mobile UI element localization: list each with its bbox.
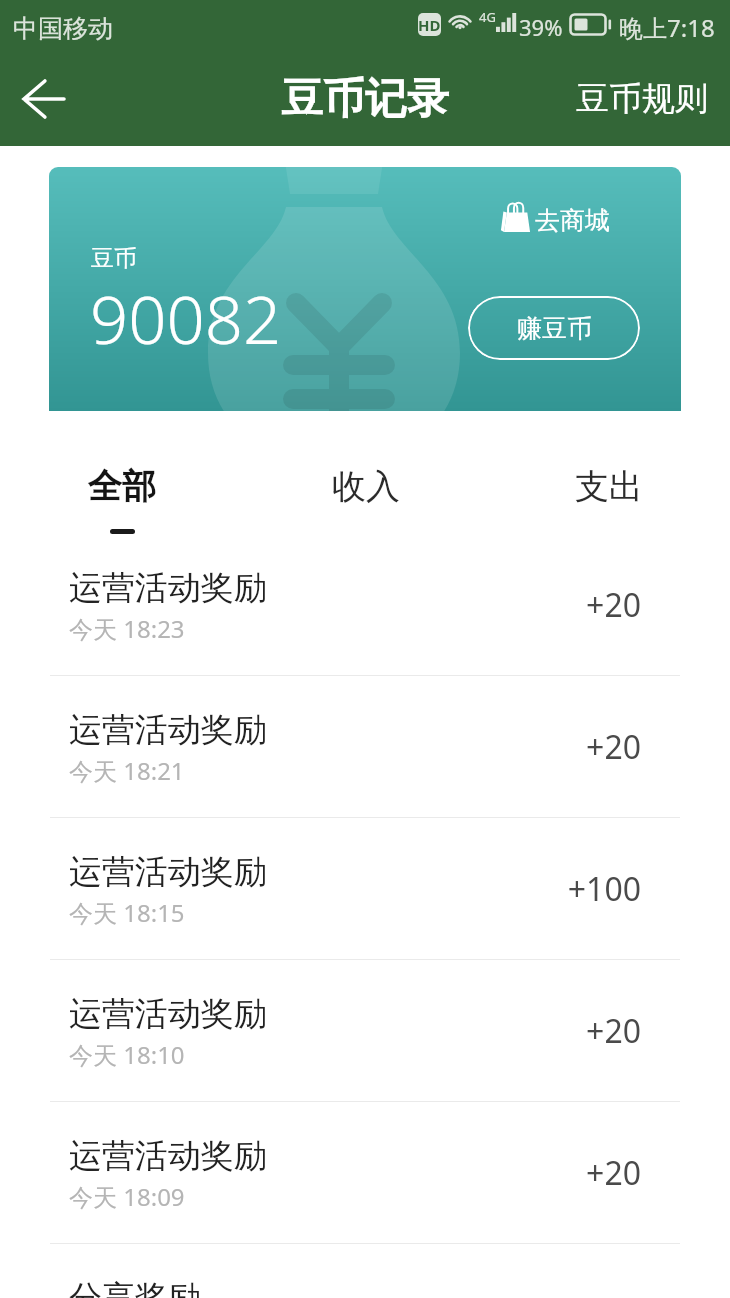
staticText: 赚豆币 <box>517 313 592 344</box>
staticText: HD <box>418 15 441 35</box>
staticText: 运营活动奖励 <box>69 851 267 893</box>
staticText: +20 <box>481 1009 641 1053</box>
staticText: 4G <box>479 8 496 26</box>
staticText: 今天 18:21 <box>69 754 185 787</box>
button[interactable]: 赚豆币 <box>468 296 640 360</box>
staticText: 今天 18:10 <box>69 1038 185 1071</box>
staticText: 运营活动奖励 <box>69 567 267 609</box>
staticText: 今天 18:09 <box>69 1180 185 1213</box>
staticText: 豆币记录 <box>281 73 449 126</box>
staticText: 今天 18:23 <box>69 612 185 645</box>
staticText: +20 <box>481 583 641 627</box>
staticText: 支出 <box>575 465 643 508</box>
staticText: 运营活动奖励 <box>69 993 267 1035</box>
button[interactable]: 运营活动奖励 <box>0 1102 730 1243</box>
button[interactable]: 运营活动奖励 <box>0 818 730 959</box>
staticText: +20 <box>481 725 641 769</box>
button[interactable]: 去商城 <box>496 196 614 237</box>
staticText: 运营活动奖励 <box>69 1135 267 1177</box>
staticText: 运营活动奖励 <box>69 709 267 751</box>
staticText: 90082 <box>90 272 282 363</box>
button[interactable]: 运营活动奖励 <box>0 676 730 817</box>
staticText: 豆币规则 <box>576 78 708 120</box>
button[interactable]: 收入 <box>244 411 487 534</box>
button[interactable]: 运营活动奖励 <box>0 534 730 675</box>
staticText: 全部 <box>88 465 156 508</box>
staticText: 收入 <box>332 465 400 508</box>
staticText: 今天 18:15 <box>69 896 185 929</box>
staticText: +100 <box>481 867 641 911</box>
staticText: +20 <box>481 1151 641 1195</box>
staticText: 39% <box>519 12 563 42</box>
staticText: 去商城 <box>535 205 610 236</box>
staticText: 分享奖励 <box>69 1277 201 1298</box>
button[interactable]: 全部 <box>0 411 244 534</box>
button[interactable]: 运营活动奖励 <box>0 960 730 1101</box>
button[interactable]: 支出 <box>487 411 730 534</box>
staticText: 中国移动 <box>13 13 113 44</box>
button[interactable]: Back <box>0 52 88 146</box>
staticText: 晚上7:18 <box>619 11 715 44</box>
button[interactable]: 分享奖励 <box>0 1244 730 1298</box>
staticText: 豆币 <box>91 244 137 273</box>
button[interactable]: 豆币规则 <box>554 52 730 146</box>
